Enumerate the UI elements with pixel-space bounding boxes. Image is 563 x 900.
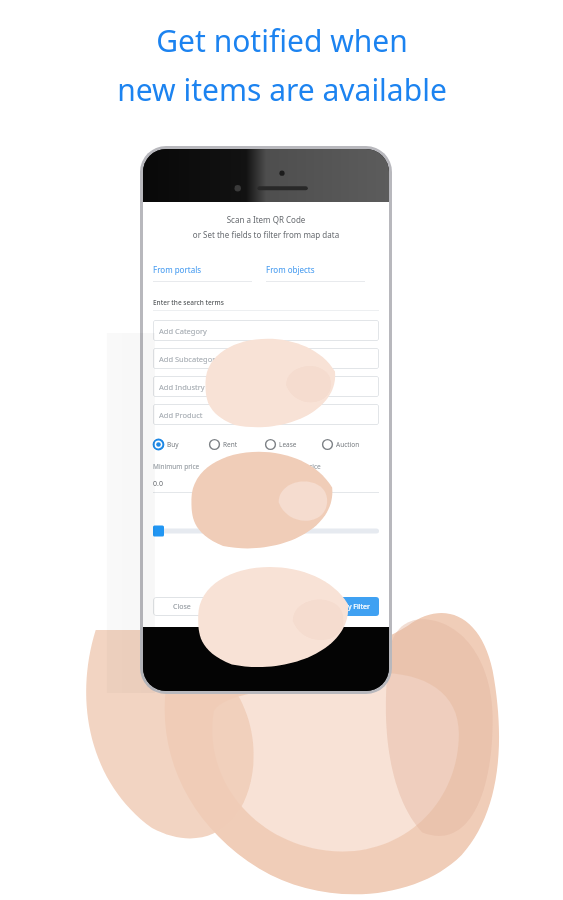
button[interactable]: Lease <box>265 439 322 450</box>
button[interactable]: Maximum price <box>273 462 379 493</box>
button[interactable]: Add Industry <box>153 376 379 397</box>
staticText: or Set the fields to filter from map dat… <box>153 229 379 240</box>
button[interactable]: Buy <box>153 439 209 450</box>
button[interactable]: Rent <box>209 439 265 450</box>
staticText: Buy <box>167 440 179 449</box>
staticText: 0.0 <box>153 479 163 489</box>
staticText: Add Subcategory <box>159 354 220 364</box>
staticText: Add Industry <box>159 382 205 392</box>
staticText: Add Product <box>159 410 203 420</box>
button[interactable]: Close <box>153 597 210 616</box>
staticText: Scan a Item QR Code <box>153 214 379 225</box>
staticText: Minimum price <box>153 462 200 471</box>
staticText: Apply Filter <box>333 602 370 612</box>
button[interactable]: From portals <box>153 262 266 284</box>
button[interactable]: Add Category <box>153 320 379 341</box>
button[interactable]: Add Subcategory <box>153 348 379 369</box>
button[interactable]: Auction <box>322 439 379 450</box>
button[interactable]: Distance slider <box>153 525 379 537</box>
staticText: Auction <box>336 440 360 449</box>
staticText: From objects <box>266 264 315 275</box>
staticText: Lease <box>279 440 297 449</box>
staticText: 1000.0 <box>273 479 295 489</box>
staticText: Enter the search terms <box>153 298 224 307</box>
staticText: new items are available <box>117 69 447 110</box>
staticText: Close <box>173 602 191 612</box>
button[interactable]: Add Product <box>153 404 379 425</box>
staticText: Get notified when <box>156 20 408 61</box>
button[interactable]: From objects <box>266 262 379 284</box>
staticText: Maximum price <box>273 462 321 471</box>
staticText: Rent <box>223 440 238 449</box>
staticText: Add Category <box>159 326 207 336</box>
button[interactable]: Apply Filter <box>323 597 379 616</box>
button[interactable]: Minimum price <box>153 462 259 493</box>
staticText: From portals <box>153 264 202 275</box>
staticText: Your distance 1.0mi. <box>153 511 379 520</box>
